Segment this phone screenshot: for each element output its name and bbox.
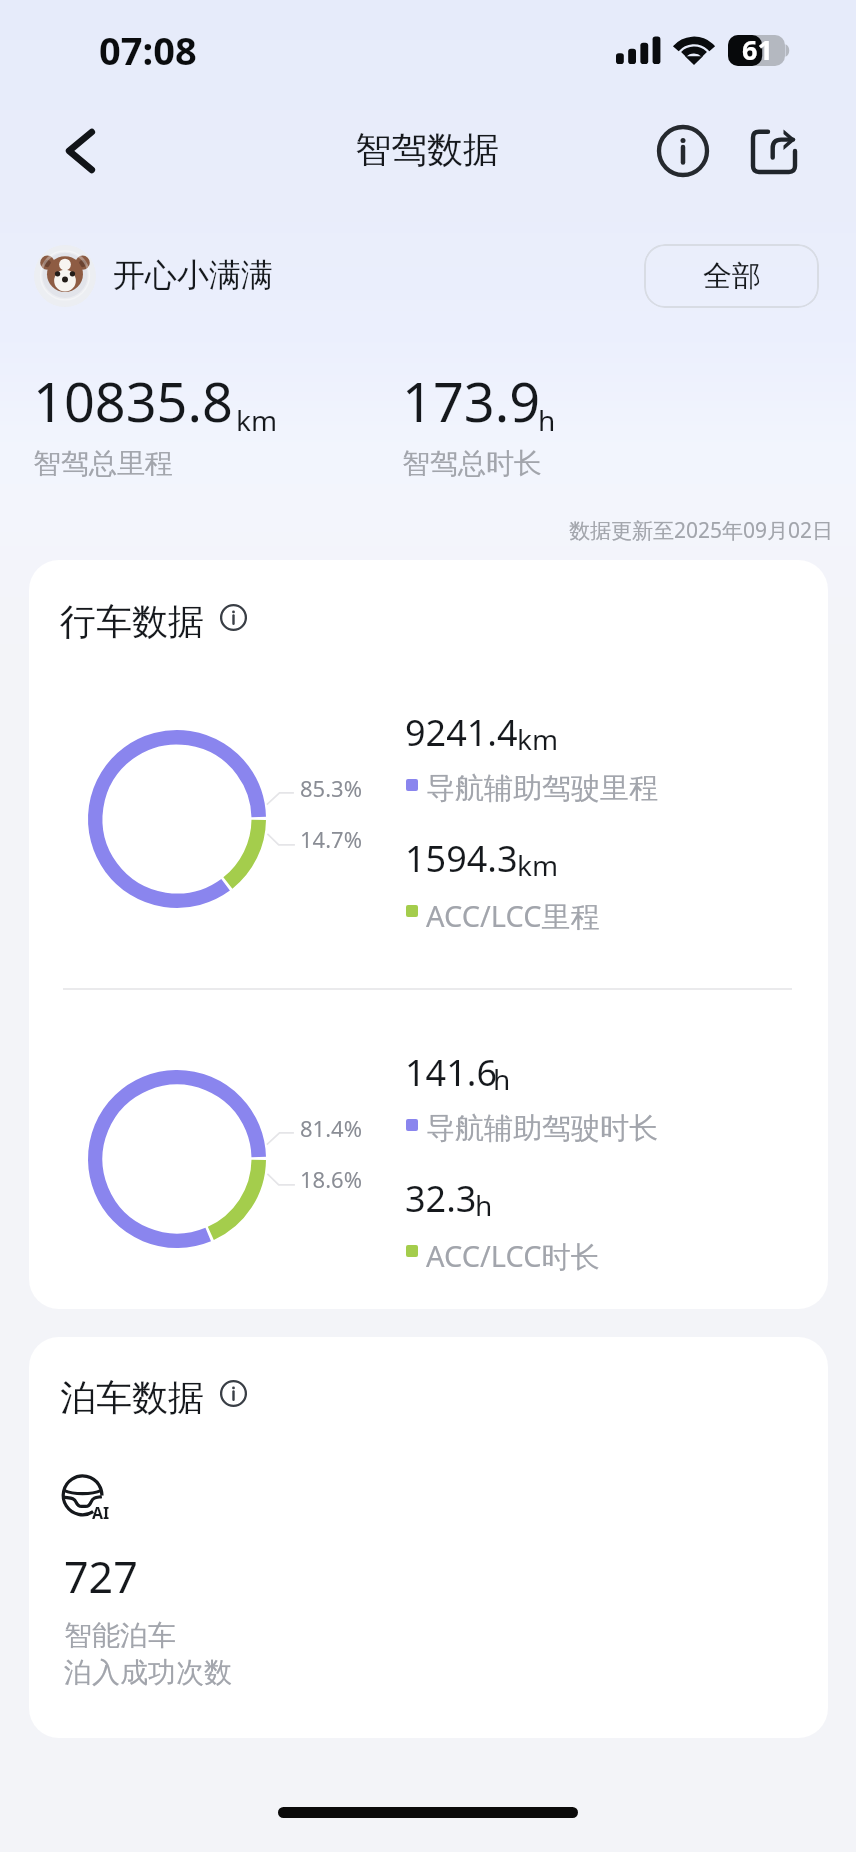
staticText: 导航辅助驾驶时长: [426, 1110, 658, 1147]
staticText: 泊入成功次数: [64, 1655, 232, 1690]
staticText: 1594.3: [405, 834, 518, 883]
staticText: 727: [64, 1547, 138, 1606]
staticText: 10835.8: [33, 364, 233, 438]
staticText: 141.6: [405, 1048, 498, 1097]
staticText: ACC/LCC里程: [426, 896, 600, 936]
staticText: 开心小满满: [113, 255, 273, 295]
staticText: 行车数据: [60, 599, 204, 644]
staticText: 18.6%: [300, 1164, 362, 1194]
staticText: h: [475, 1186, 493, 1224]
staticText: km: [236, 401, 278, 439]
staticText: 32.3: [405, 1174, 477, 1223]
button[interactable]: Share: [743, 118, 803, 178]
staticText: h: [493, 1060, 511, 1098]
staticText: 61: [742, 31, 773, 62]
staticText: 导航辅助驾驶里程: [426, 770, 658, 807]
staticText: km: [517, 846, 559, 884]
staticText: 9241.4: [405, 708, 518, 757]
staticText: AI: [92, 1502, 110, 1524]
staticText: h: [538, 401, 556, 439]
staticText: 数据更新至2025年09月02日: [569, 516, 834, 545]
staticText: 85.3%: [300, 773, 362, 803]
button[interactable]: Back: [40, 119, 104, 183]
staticText: 智驾数据: [355, 127, 499, 172]
button[interactable]: Info: [651, 119, 715, 183]
staticText: 14.7%: [300, 824, 362, 854]
button[interactable]: [54, 593, 284, 641]
button[interactable]: 全部: [644, 244, 819, 308]
button[interactable]: [54, 1369, 284, 1417]
staticText: 智能泊车: [64, 1618, 176, 1653]
staticText: 智驾总时长: [402, 446, 542, 481]
staticText: 全部: [703, 258, 761, 295]
staticText: 泊车数据: [60, 1375, 204, 1420]
staticText: ACC/LCC时长: [426, 1236, 600, 1276]
staticText: 81.4%: [300, 1113, 362, 1143]
button[interactable]: Profile avatar: [34, 245, 96, 307]
staticText: km: [517, 720, 559, 758]
staticText: 07:08: [99, 24, 197, 76]
staticText: 173.9: [402, 364, 541, 438]
staticText: 智驾总里程: [33, 446, 173, 481]
